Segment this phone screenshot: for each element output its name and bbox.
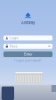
staticText: AeroPay xyxy=(21,20,35,25)
staticText: Pass xyxy=(9,44,17,48)
staticText: Login xyxy=(9,36,18,40)
button[interactable]: Enter xyxy=(3,51,52,57)
button[interactable]: Forgot password? xyxy=(14,59,42,62)
staticText: Enter xyxy=(24,52,32,56)
staticText: Forgot password? xyxy=(14,59,42,62)
